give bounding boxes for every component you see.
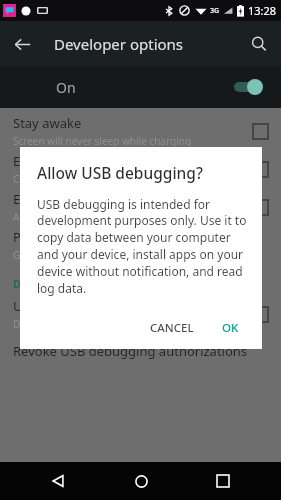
button[interactable]: Recents xyxy=(199,462,247,500)
staticText: Debug mode when USB is connected xyxy=(13,317,187,331)
staticText: Stay awake xyxy=(13,114,82,132)
staticText: USB debugging is intended for developmen… xyxy=(37,196,248,297)
button[interactable]: USB debugging xyxy=(0,295,281,333)
staticText: Geeky stats about running processes xyxy=(13,248,187,262)
button[interactable]: Search xyxy=(237,22,281,66)
staticText: Allow the bootloader to be unlocked xyxy=(13,210,184,224)
staticText: 3G xyxy=(210,6,220,16)
staticText: Allow USB debugging? xyxy=(37,162,203,183)
button[interactable]: On xyxy=(0,66,281,108)
staticText: Enable OEM unlocking xyxy=(13,190,151,208)
staticText: Capture all bluetooth HCI packets in a f… xyxy=(13,172,208,186)
button[interactable]: Home xyxy=(117,462,165,500)
button[interactable]: Back xyxy=(0,22,44,66)
button[interactable]: Enable Bluetooth HCI snoop log xyxy=(0,150,281,188)
staticText: CANCEL xyxy=(150,320,194,336)
button[interactable]: Enable OEM unlocking xyxy=(0,188,281,226)
staticText: Debugging xyxy=(13,276,74,291)
staticText: USB debugging xyxy=(13,297,109,315)
staticText: Developer options xyxy=(54,34,184,54)
staticText: Screen will never sleep while charging xyxy=(13,134,192,148)
staticText: OK xyxy=(222,320,239,336)
button[interactable]: OK xyxy=(213,313,248,343)
button[interactable]: CANCEL xyxy=(141,313,203,343)
button[interactable]: Process Stats xyxy=(0,226,281,264)
staticText: Revoke USB debugging authorizations xyxy=(13,342,248,360)
staticText: 13:28 xyxy=(248,3,277,18)
button[interactable]: Back xyxy=(34,462,82,500)
button[interactable]: Revoke USB debugging authorizations xyxy=(0,333,281,369)
staticText: On xyxy=(56,78,76,97)
button[interactable]: Stay awake xyxy=(0,112,281,150)
staticText: Enable Bluetooth HCI snoop log xyxy=(13,152,208,170)
staticText: Process Stats xyxy=(13,228,94,246)
